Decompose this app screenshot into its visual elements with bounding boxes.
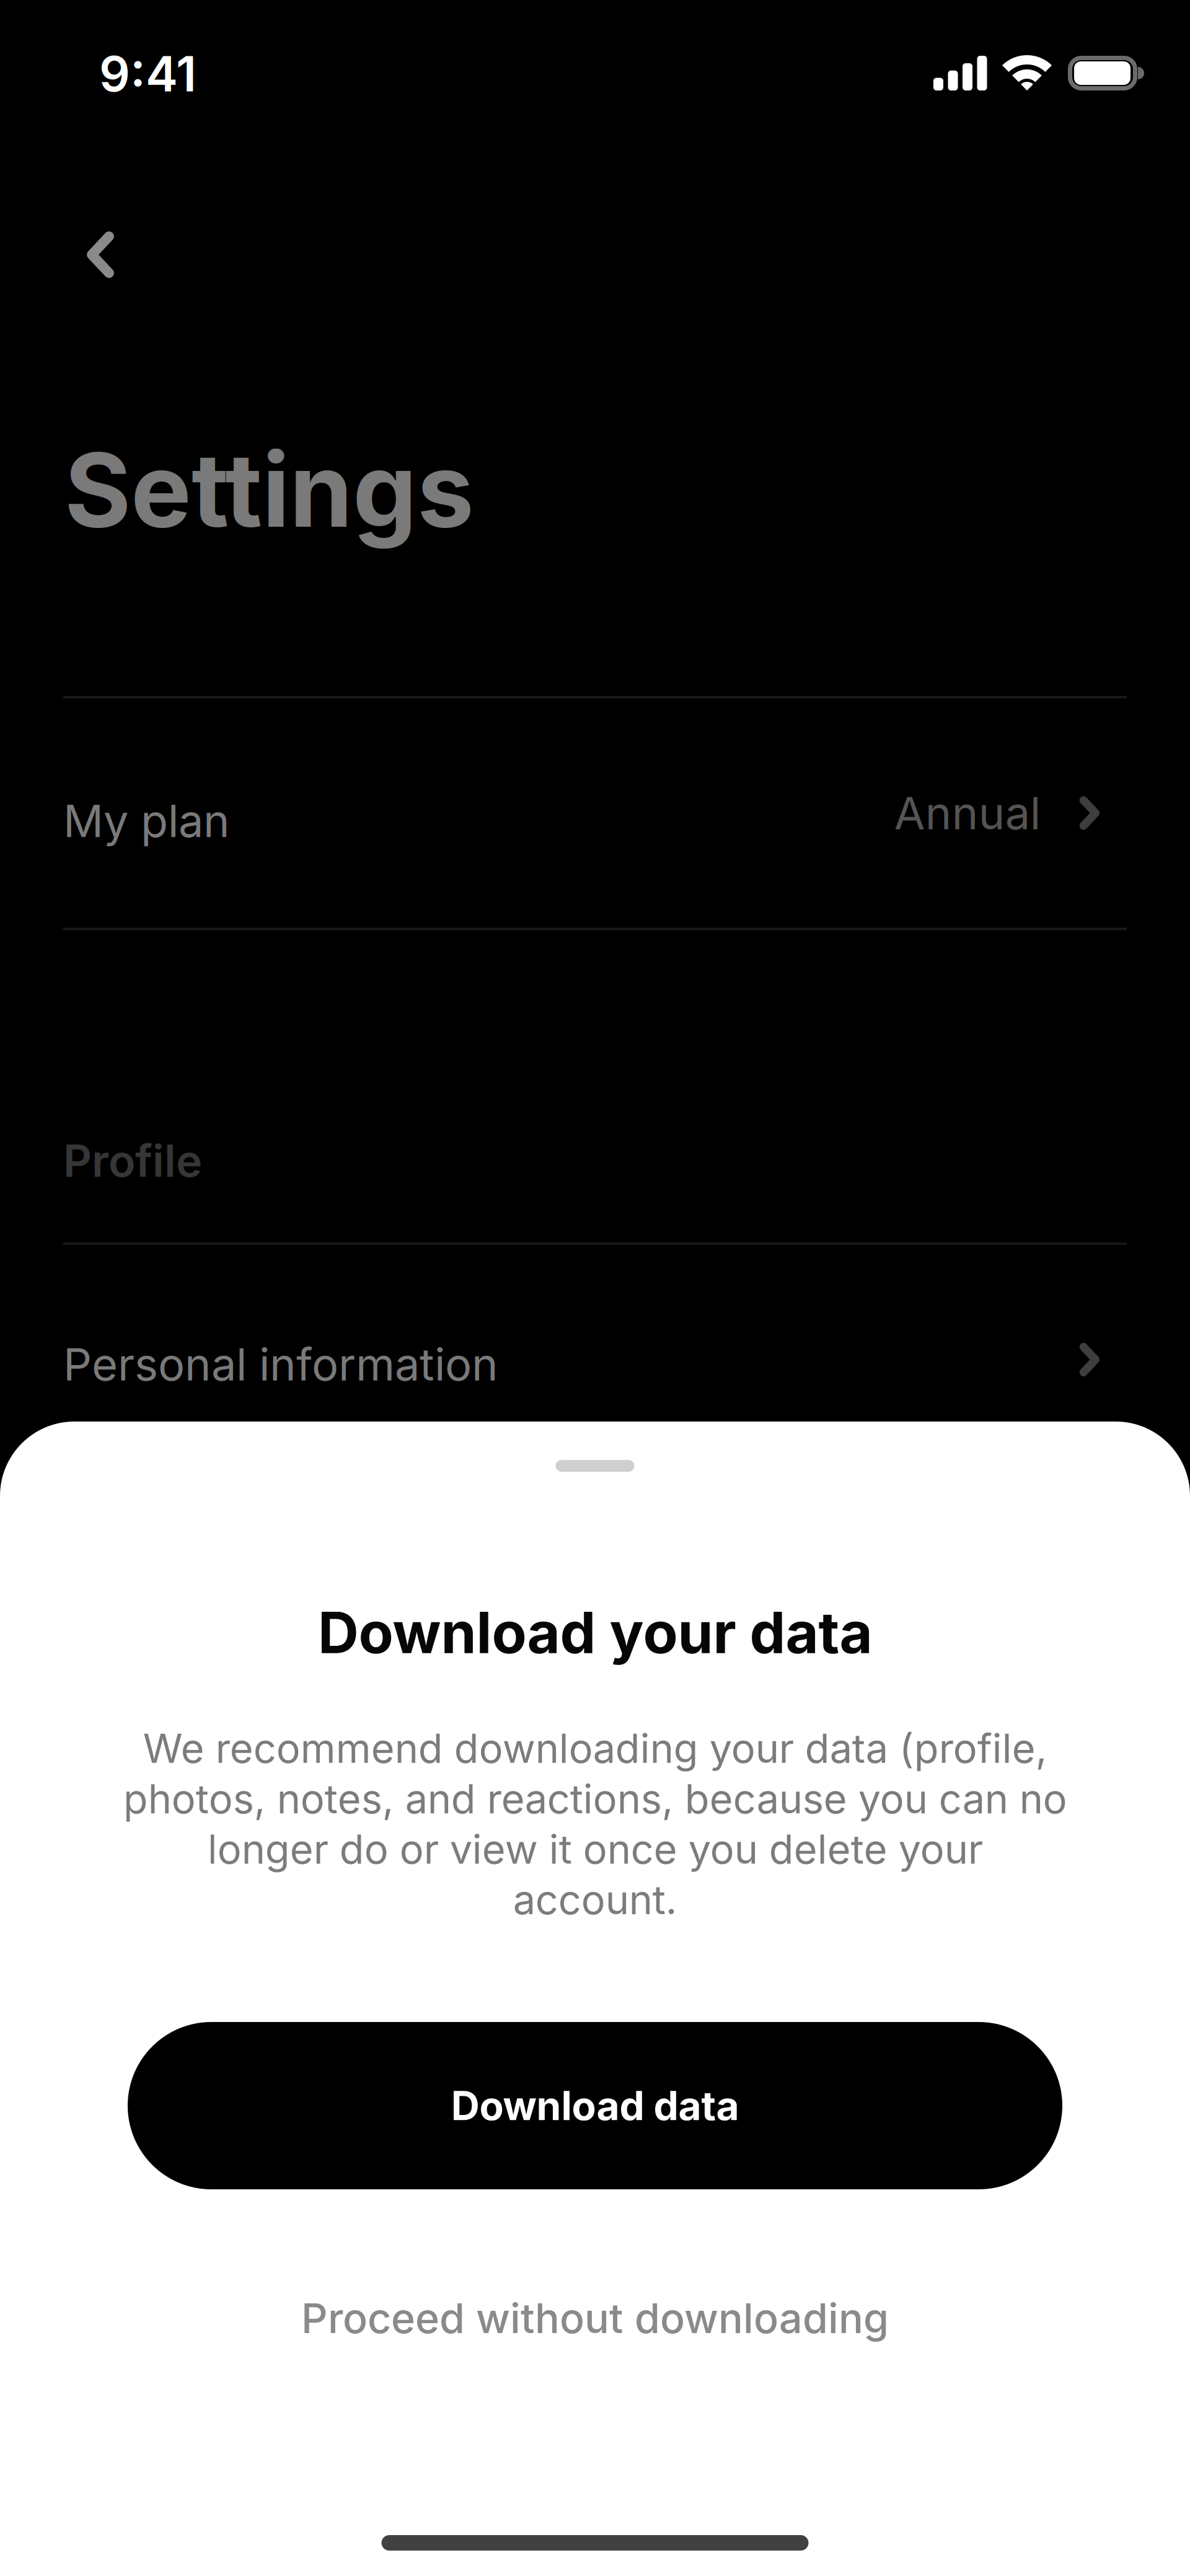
staticText: Download data <box>451 2082 739 2130</box>
button[interactable]: Proceed without downloading <box>192 2288 998 2348</box>
staticText: Settings <box>64 428 474 551</box>
staticText: Personal information <box>63 1337 498 1391</box>
button[interactable]: Download data <box>128 2022 1062 2189</box>
staticText: Proceed without downloading <box>301 2293 889 2343</box>
button[interactable]: Back <box>60 214 141 295</box>
staticText: We recommend downloading your data (prof… <box>123 1724 1067 1924</box>
staticText: Profile <box>63 1134 202 1187</box>
staticText: Download your data <box>318 1598 872 1667</box>
staticText: Annual <box>894 786 1040 840</box>
button[interactable]: Personal information <box>63 1245 1127 1474</box>
staticText: My plan <box>63 794 230 848</box>
staticText: 9:41 <box>99 45 196 103</box>
button[interactable]: My plan <box>63 698 1127 928</box>
